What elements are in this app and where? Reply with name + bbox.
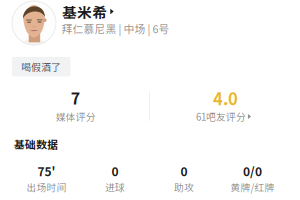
- staticText: 7: [71, 86, 80, 109]
- staticText: 黄牌/红牌: [231, 180, 275, 194]
- staticText: 进球: [105, 180, 125, 194]
- staticText: 基础数据: [14, 136, 58, 152]
- button[interactable]: 61吧友评分: [196, 109, 251, 124]
- staticText: 0: [180, 162, 187, 180]
- staticText: 0/0: [243, 162, 262, 180]
- staticText: 助攻: [174, 180, 194, 194]
- button[interactable]: 基米希: [62, 1, 114, 22]
- staticText: 拜仁慕尼黑 | 中场 | 6号: [61, 21, 169, 36]
- staticText: 媒体评分: [56, 109, 96, 124]
- staticText: 61吧友评分: [196, 109, 246, 124]
- staticText: 喝假酒了: [21, 60, 61, 74]
- staticText: 基米希: [62, 1, 107, 22]
- staticText: 4.0: [213, 86, 238, 110]
- staticText: 0: [112, 162, 119, 180]
- button[interactable]: 4.0: [213, 86, 238, 110]
- staticText: 75': [37, 162, 55, 180]
- staticText: 出场时间: [26, 180, 66, 194]
